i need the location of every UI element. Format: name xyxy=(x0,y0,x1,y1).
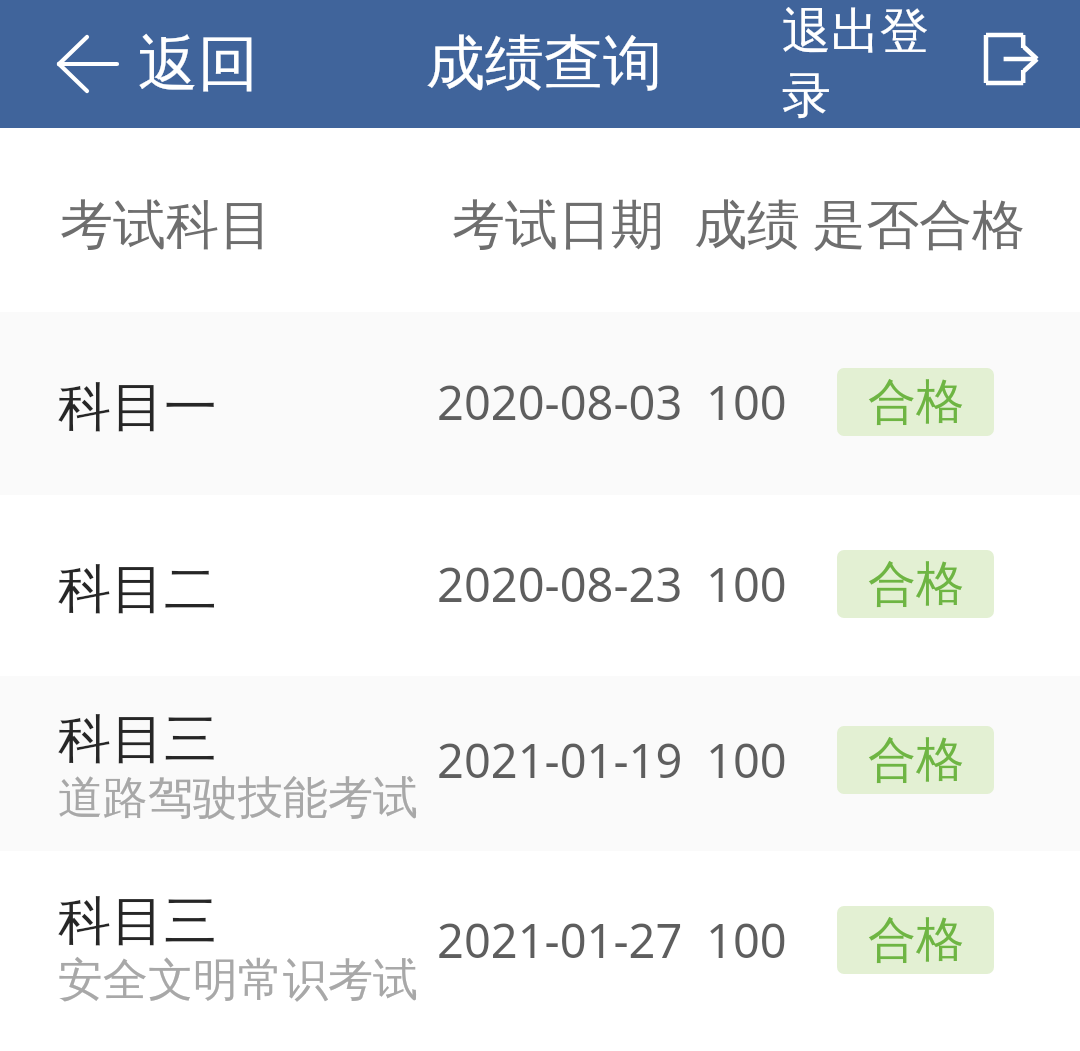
staticText: 100 xyxy=(706,908,787,972)
staticText: 考试日期 xyxy=(452,192,664,259)
button[interactable]: 科目三 xyxy=(0,851,1080,1033)
staticText: 科目二 xyxy=(58,556,217,623)
button[interactable]: 退出登录 xyxy=(984,33,1040,85)
button[interactable]: 科目一 xyxy=(0,312,1080,495)
staticText: 合格 xyxy=(868,554,964,614)
staticText: 2021-01-19 xyxy=(437,728,683,792)
button[interactable]: 返回 xyxy=(56,26,258,102)
button[interactable]: 科目三 xyxy=(0,676,1080,851)
staticText: 安全文明常识考试 xyxy=(58,952,418,1009)
staticText: 道路驾驶技能考试 xyxy=(58,770,418,827)
staticText: 退出登录 xyxy=(782,1,932,126)
staticText: 成绩查询 xyxy=(426,26,662,100)
staticText: 是否合格 xyxy=(813,192,1025,259)
staticText: 合格 xyxy=(868,910,964,970)
staticText: 科目一 xyxy=(58,374,217,441)
staticText: 2020-08-03 xyxy=(437,370,683,434)
staticText: 考试科目 xyxy=(60,192,272,259)
staticText: 100 xyxy=(706,552,787,616)
button[interactable]: 科目二 xyxy=(0,495,1080,676)
staticText: 成绩 xyxy=(694,192,800,259)
staticText: 科目三 xyxy=(58,706,217,773)
staticText: 2020-08-23 xyxy=(437,552,683,616)
staticText: 科目三 xyxy=(58,888,217,955)
staticText: 合格 xyxy=(868,730,964,790)
staticText: 100 xyxy=(706,370,787,434)
button[interactable]: 退出登录 xyxy=(782,0,932,128)
staticText: 100 xyxy=(706,728,787,792)
staticText: 返回 xyxy=(138,26,258,102)
staticText: 合格 xyxy=(868,372,964,432)
staticText: 2021-01-27 xyxy=(437,908,683,972)
